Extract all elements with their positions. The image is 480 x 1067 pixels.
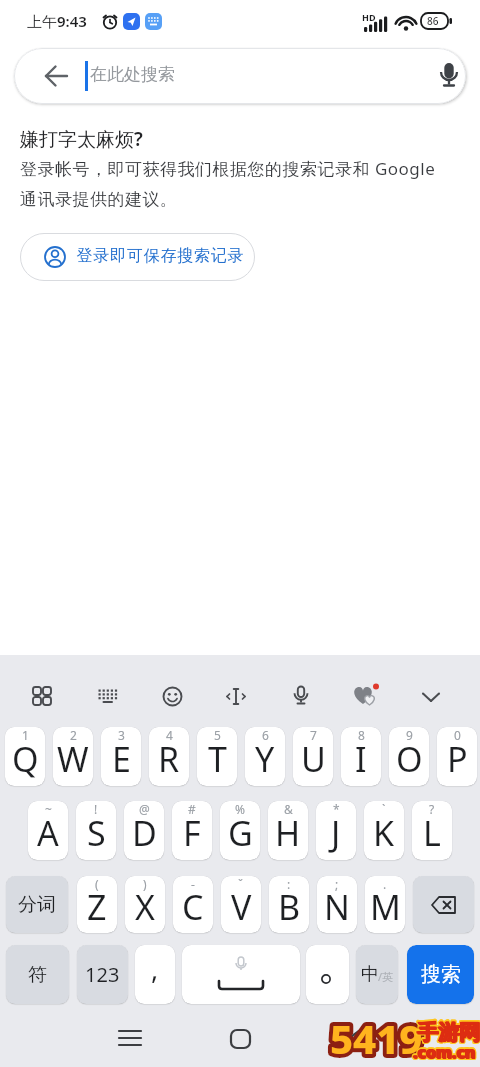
button[interactable]: 1 — [5, 727, 45, 786]
button[interactable] — [420, 687, 442, 709]
staticText: J — [331, 810, 341, 856]
button[interactable]: ~ — [28, 801, 68, 860]
staticText: . — [383, 876, 387, 892]
staticText: 6 — [262, 727, 269, 743]
staticText: H — [275, 810, 301, 856]
button[interactable] — [182, 945, 300, 1004]
staticText: ? — [429, 801, 435, 817]
button[interactable] — [351, 682, 381, 712]
staticText: 分词 — [18, 893, 56, 917]
staticText: 2 — [70, 727, 77, 743]
button[interactable]: 0 — [437, 727, 477, 786]
button[interactable]: : — [269, 876, 309, 933]
button[interactable]: ( — [77, 876, 117, 933]
staticText: F — [183, 810, 201, 856]
staticText: A — [37, 810, 59, 856]
button[interactable]: 5 — [197, 727, 237, 786]
staticText: ) — [143, 876, 147, 892]
staticText: 手游网 — [416, 1019, 479, 1045]
button[interactable]: % — [220, 801, 260, 860]
staticText: 手游网 — [418, 1019, 480, 1045]
button[interactable]: 123 — [77, 945, 128, 1004]
button[interactable] — [31, 685, 53, 707]
staticText: S — [87, 810, 106, 856]
button[interactable]: 登录即可保存搜索记录 — [20, 233, 255, 281]
staticText: 手游网 — [417, 1020, 480, 1046]
staticText: HD — [362, 11, 376, 23]
staticText: @ — [139, 801, 150, 817]
staticText: 7 — [310, 727, 317, 743]
staticText: P — [447, 736, 468, 782]
button[interactable] — [97, 685, 119, 707]
staticText: 登录即可保存搜索记录 — [76, 246, 244, 266]
button[interactable]: 分词 — [6, 876, 68, 933]
staticText: & — [284, 801, 293, 817]
staticText: G — [228, 810, 253, 856]
button[interactable] — [162, 686, 183, 707]
button[interactable]: # — [172, 801, 212, 860]
button[interactable]: ? — [412, 801, 452, 860]
button[interactable]: 9 — [389, 727, 429, 786]
button[interactable]: 3 — [101, 727, 141, 786]
staticText: B — [278, 884, 301, 930]
button[interactable]: 8 — [341, 727, 381, 786]
staticText: 手游网 — [418, 1020, 480, 1046]
button[interactable]: ` — [364, 801, 404, 860]
staticText: .com.cn — [413, 1041, 476, 1063]
button[interactable]: 搜索 — [407, 945, 474, 1004]
staticText: .com.cn — [413, 1042, 476, 1064]
staticText: 4 — [166, 727, 173, 743]
button[interactable] — [345, 1030, 363, 1048]
button[interactable] — [290, 684, 312, 706]
staticText: 上午9:43 — [27, 11, 87, 31]
button[interactable]: ) — [125, 876, 165, 933]
button[interactable]: 7 — [293, 727, 333, 786]
staticText: R — [158, 736, 180, 782]
staticText: .com.cn — [414, 1041, 477, 1063]
button[interactable] — [230, 1029, 251, 1049]
staticText: T — [208, 736, 227, 782]
staticText: 5419 — [330, 1011, 423, 1065]
button[interactable] — [119, 1029, 141, 1047]
staticText: 0 — [454, 727, 461, 743]
staticText: L — [423, 810, 441, 856]
staticText: W — [57, 736, 89, 782]
staticText: 搜索 — [421, 962, 461, 987]
staticText: 1 — [22, 727, 29, 743]
button[interactable]: 中 — [356, 945, 398, 1004]
button[interactable]: & — [268, 801, 308, 860]
staticText: O — [396, 736, 423, 782]
staticText: K — [373, 810, 395, 856]
staticText: Y — [255, 736, 275, 782]
staticText: : — [287, 876, 291, 892]
button[interactable]: - — [173, 876, 213, 933]
staticText: Z — [87, 884, 107, 930]
button[interactable]: ; — [317, 876, 357, 933]
staticText: C — [182, 884, 204, 930]
staticText: % — [235, 801, 245, 817]
staticText: N — [324, 884, 350, 930]
button[interactable]: 4 — [149, 727, 189, 786]
staticText: D — [132, 810, 157, 856]
button[interactable]: , — [135, 945, 175, 1004]
button[interactable]: 在此处搜索 — [14, 48, 466, 104]
button[interactable]: ! — [76, 801, 116, 860]
button[interactable]: ˇ — [221, 876, 261, 933]
button[interactable] — [306, 945, 349, 1004]
staticText: 5 — [214, 727, 221, 743]
staticText: 嫌打字太麻烦? — [20, 126, 143, 152]
button[interactable]: . — [365, 876, 405, 933]
button[interactable]: 6 — [245, 727, 285, 786]
staticText: Q — [12, 736, 39, 782]
staticText: .com.cn — [412, 1041, 475, 1063]
button[interactable]: * — [316, 801, 356, 860]
button[interactable] — [413, 876, 474, 933]
button[interactable]: 符 — [6, 945, 69, 1004]
staticText: 5419 — [330, 1011, 423, 1065]
button[interactable] — [225, 686, 247, 708]
button[interactable]: 2 — [53, 727, 93, 786]
staticText: , — [151, 950, 159, 987]
button[interactable]: @ — [124, 801, 164, 860]
staticText: ! — [94, 801, 98, 817]
staticText: X — [135, 884, 155, 930]
